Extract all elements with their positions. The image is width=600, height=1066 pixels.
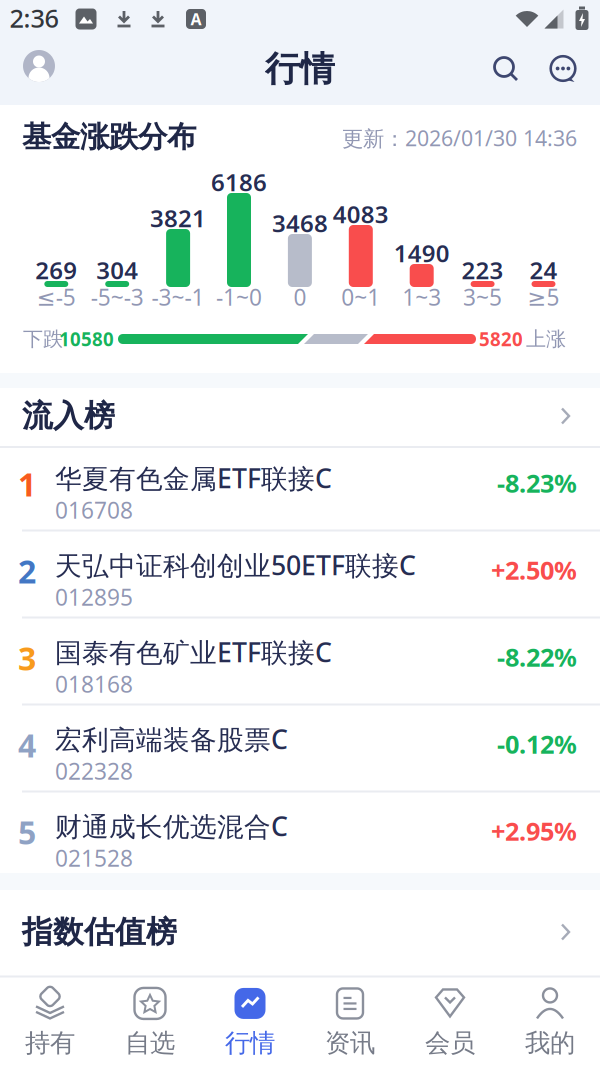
staticText: -8.23% [497, 466, 577, 500]
staticText: 24 [529, 254, 557, 286]
button[interactable]: Messages [549, 55, 577, 83]
staticText: 国泰有色矿业ETF联接C [55, 634, 332, 670]
staticText: 更新：2026/01/30 14:36 [342, 124, 577, 152]
button[interactable]: 资讯 [300, 977, 400, 1066]
staticText: A [190, 8, 201, 30]
staticText: 018168 [55, 669, 133, 699]
button[interactable]: 持有 [0, 977, 100, 1066]
staticText: 行情 [225, 1027, 275, 1058]
staticText: -3~-1 [152, 282, 205, 312]
staticText: 0~1 [341, 282, 380, 312]
staticText: 宏利高端装备股票C [55, 721, 288, 757]
button[interactable]: 会员 [400, 977, 500, 1066]
staticText: -8.22% [497, 640, 577, 674]
staticText: 021528 [55, 843, 133, 873]
button[interactable]: 5 [0, 795, 600, 882]
staticText: 022328 [55, 756, 133, 786]
staticText: 流入榜 [22, 397, 115, 435]
staticText: -5~-3 [91, 282, 144, 312]
staticText: 012895 [55, 582, 133, 612]
staticText: 财通成长优选混合C [55, 808, 288, 844]
staticText: 4 [18, 724, 36, 766]
staticText: -0.12% [497, 727, 577, 761]
button[interactable]: 3 [0, 621, 600, 708]
staticText: 6186 [211, 166, 267, 198]
staticText: 1490 [394, 237, 450, 269]
staticText: 223 [462, 254, 504, 286]
button[interactable]: Profile [23, 50, 55, 82]
staticText: 下跌 [23, 327, 63, 351]
staticText: 3 [18, 637, 36, 679]
staticText: ≤-5 [37, 282, 76, 312]
staticText: +2.50% [491, 553, 577, 587]
staticText: 资讯 [325, 1027, 375, 1058]
staticText: 2 [18, 550, 36, 592]
staticText: 016708 [55, 495, 133, 525]
staticText: 自选 [125, 1027, 175, 1058]
staticText: 269 [35, 254, 77, 286]
button[interactable]: 行情 [200, 977, 300, 1066]
button[interactable]: 指数估值榜 [0, 902, 600, 962]
staticText: 0 [293, 282, 306, 312]
staticText: 上涨 [526, 327, 566, 351]
button[interactable]: 1 [0, 447, 600, 534]
staticText: 行情 [265, 48, 335, 90]
button[interactable]: 流入榜 [0, 386, 600, 446]
button[interactable]: 我的 [500, 977, 600, 1066]
staticText: 2:36 [9, 1, 58, 35]
staticText: 3~5 [463, 282, 502, 312]
staticText: 3821 [150, 202, 206, 234]
button[interactable]: 自选 [100, 977, 200, 1066]
staticText: 我的 [525, 1027, 575, 1058]
staticText: 1 [18, 463, 36, 505]
staticText: 指数估值榜 [22, 913, 177, 951]
staticText: 4083 [333, 198, 389, 230]
staticText: 1~3 [402, 282, 441, 312]
staticText: 基金涨跌分布 [22, 119, 196, 155]
staticText: 华夏有色金属ETF联接C [55, 460, 332, 496]
button[interactable]: 4 [0, 708, 600, 795]
staticText: 304 [96, 254, 138, 286]
staticText: 5 [18, 811, 36, 853]
staticText: 天弘中证科创创业50ETF联接C [55, 547, 416, 583]
staticText: 持有 [25, 1027, 75, 1058]
staticText: 会员 [425, 1027, 475, 1058]
staticText: -1~0 [216, 282, 262, 312]
button[interactable]: 2 [0, 534, 600, 621]
staticText: ≥5 [527, 282, 559, 312]
staticText: 5820 [479, 327, 523, 351]
staticText: 3468 [272, 207, 328, 239]
staticText: 10580 [59, 327, 114, 351]
staticText: +2.95% [491, 814, 577, 848]
button[interactable]: Search [493, 56, 519, 82]
